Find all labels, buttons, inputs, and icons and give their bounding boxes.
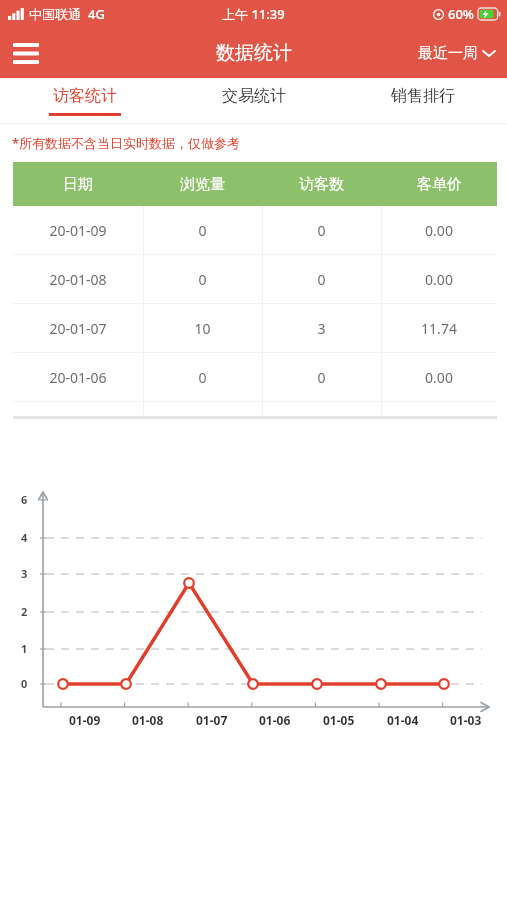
staticText: 11.74	[421, 319, 457, 338]
button[interactable]: 20-01-07	[13, 304, 497, 352]
staticText: 20-01-08	[49, 270, 107, 289]
staticText: 20-01-07	[49, 319, 107, 338]
staticText: 4G	[88, 5, 105, 23]
button[interactable]: 交易统计	[169, 78, 338, 123]
button[interactable]: 20-01-08	[13, 255, 497, 303]
staticText: 60%	[448, 5, 474, 23]
staticText: 0	[198, 368, 207, 387]
staticText: 01-03	[450, 712, 482, 728]
staticText: 01-07	[196, 712, 228, 728]
staticText: 01-09	[69, 712, 101, 728]
staticText: *所有数据不含当日实时数据，仅做参考	[12, 134, 241, 152]
staticText: 01-05	[323, 712, 355, 728]
button[interactable]: 最近一周	[408, 28, 507, 78]
staticText: 最近一周	[418, 44, 478, 63]
staticText: 01-06	[259, 712, 291, 728]
staticText: 中国联通	[29, 6, 81, 22]
staticText: 0.00	[425, 270, 453, 289]
staticText: 上午 11:39	[222, 5, 285, 23]
staticText: 4	[21, 530, 28, 545]
staticText: 交易统计	[222, 86, 286, 106]
staticText: 01-04	[387, 712, 419, 728]
button[interactable]: Menu	[0, 28, 52, 78]
staticText: 浏览量	[180, 175, 225, 194]
staticText: 10	[194, 319, 211, 338]
staticText: 20-01-06	[49, 368, 107, 387]
staticText: 3	[21, 566, 28, 581]
staticText: 1	[21, 641, 28, 656]
button[interactable]: 20-01-06	[13, 353, 497, 401]
staticText: 01-08	[132, 712, 164, 728]
staticText: 0.00	[425, 368, 453, 387]
button[interactable]: 20-01-09	[13, 206, 497, 254]
staticText: 0	[198, 221, 207, 240]
staticText: 0	[317, 270, 326, 289]
staticText: 0	[21, 676, 28, 691]
staticText: 20-01-09	[49, 221, 107, 240]
staticText: 0.00	[425, 221, 453, 240]
staticText: 6	[21, 492, 28, 507]
staticText: 访客数	[299, 175, 344, 194]
staticText: 日期	[63, 175, 93, 194]
staticText: 3	[317, 319, 326, 338]
button[interactable]: 访客统计	[0, 78, 169, 123]
staticText: 访客统计	[53, 86, 117, 106]
staticText: 0	[317, 221, 326, 240]
staticText: 数据统计	[216, 41, 292, 65]
staticText: 0	[198, 270, 207, 289]
button[interactable]: 销售排行	[338, 78, 507, 123]
staticText: 销售排行	[391, 86, 455, 106]
staticText: 客单价	[417, 175, 462, 194]
staticText: 0	[317, 368, 326, 387]
staticText: 2	[21, 604, 28, 619]
